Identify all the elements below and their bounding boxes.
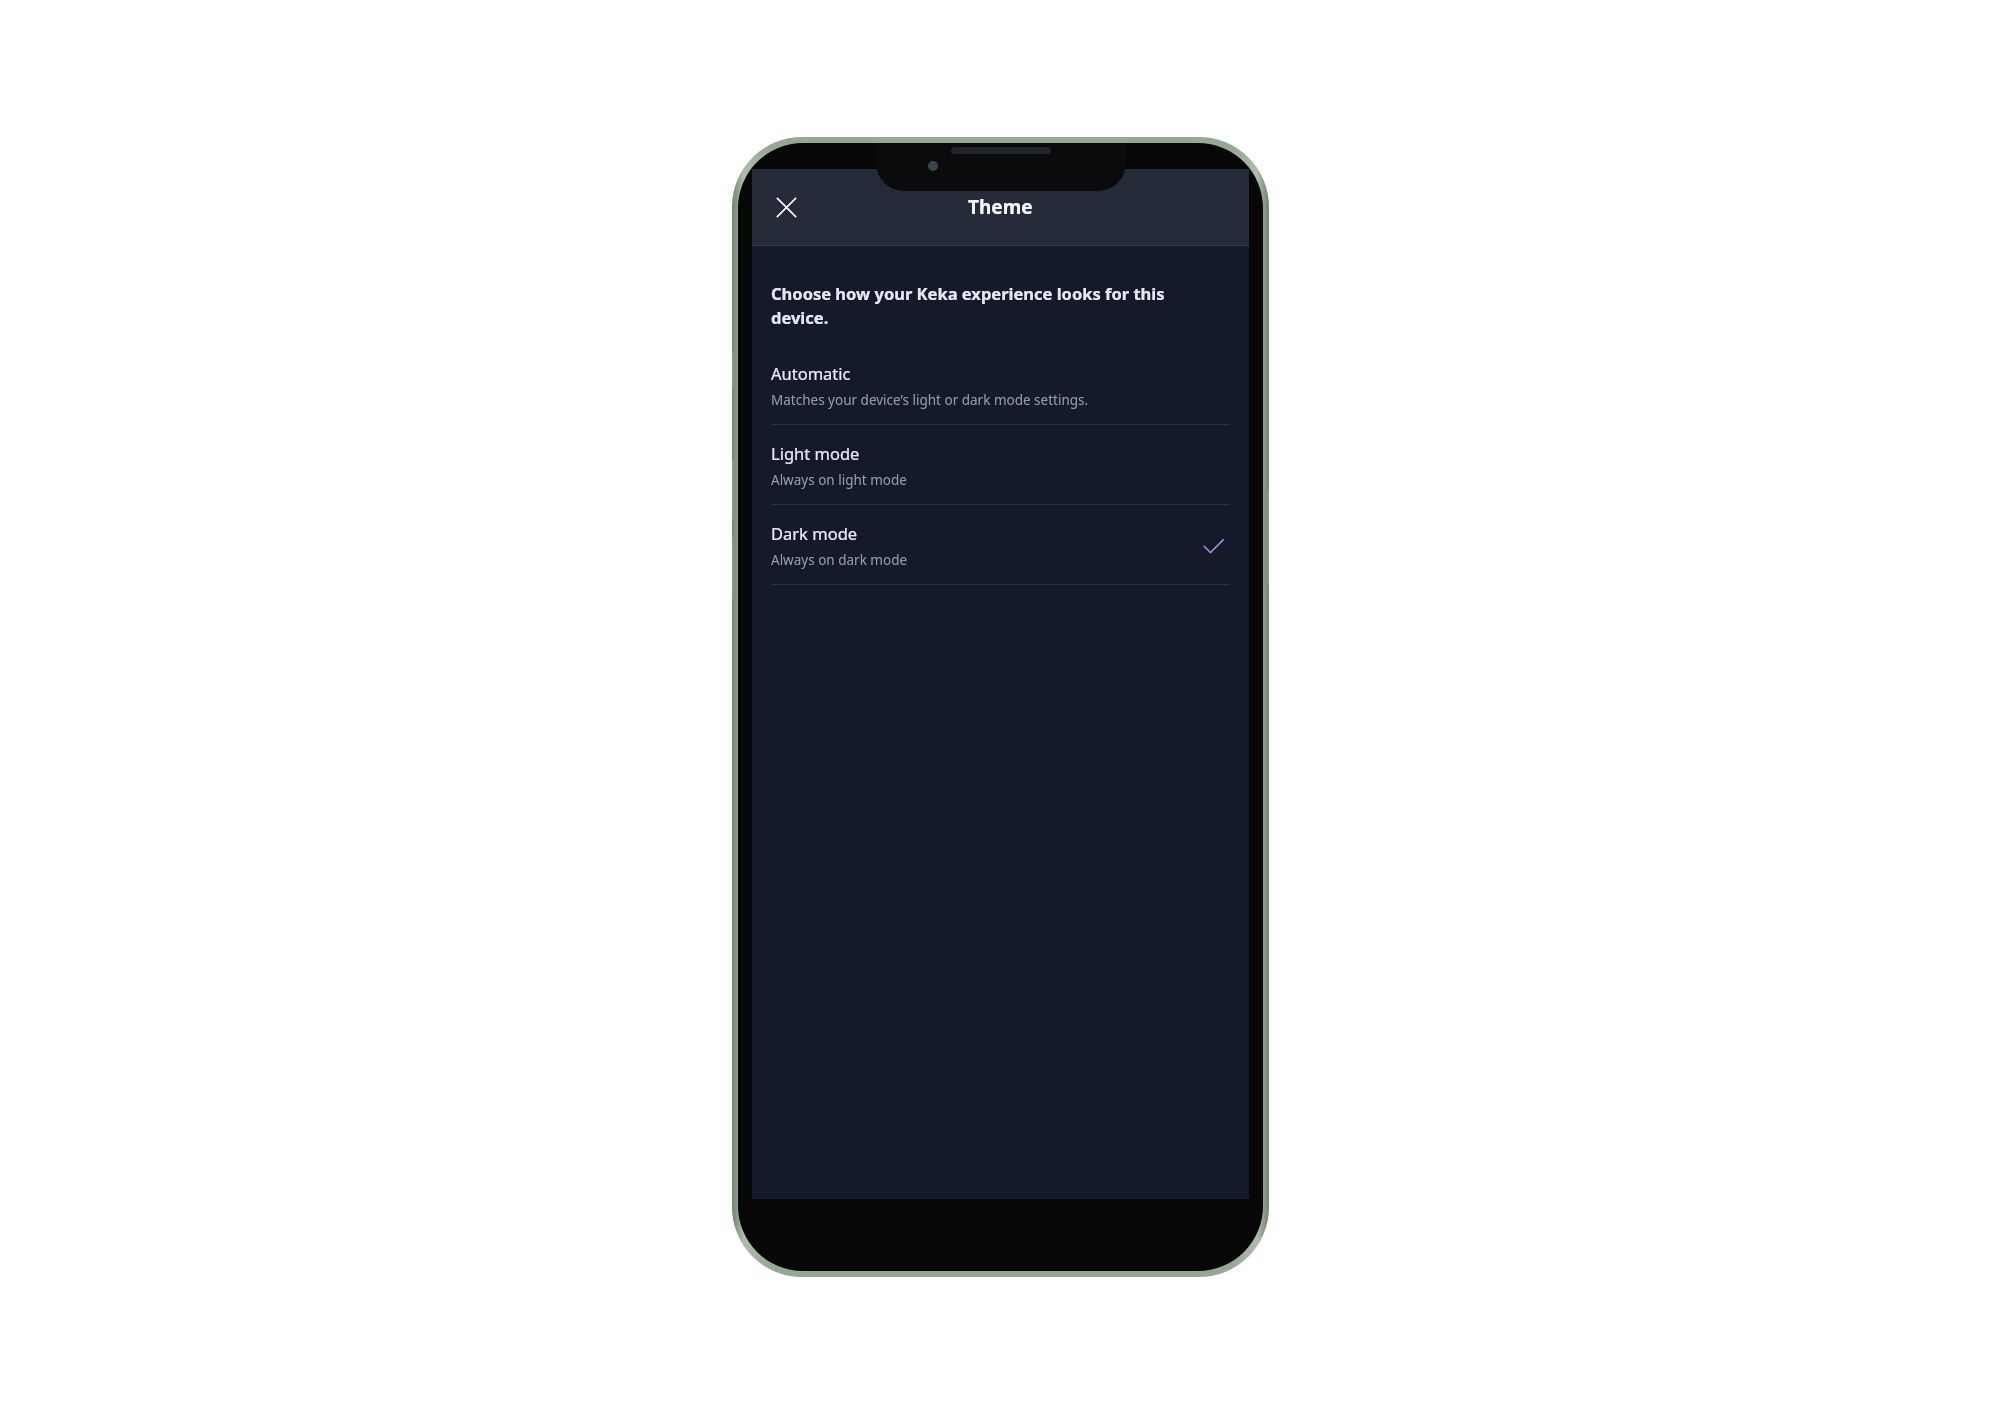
button[interactable]: Light mode [771, 442, 1230, 504]
staticText: Dark mode [771, 522, 858, 544]
button[interactable]: Automatic [771, 362, 1230, 424]
staticText: Matches your device’s light or dark mode… [771, 391, 1089, 409]
staticText: Choose how your Keka experience looks fo… [771, 282, 1219, 329]
staticText: Light mode [771, 442, 860, 464]
staticText: Theme [968, 194, 1033, 220]
button[interactable]: Dark mode [771, 522, 1230, 584]
staticText: Always on light mode [771, 471, 907, 489]
staticText: Automatic [771, 362, 851, 384]
staticText: Always on dark mode [771, 551, 908, 569]
button[interactable]: Close [763, 184, 809, 230]
